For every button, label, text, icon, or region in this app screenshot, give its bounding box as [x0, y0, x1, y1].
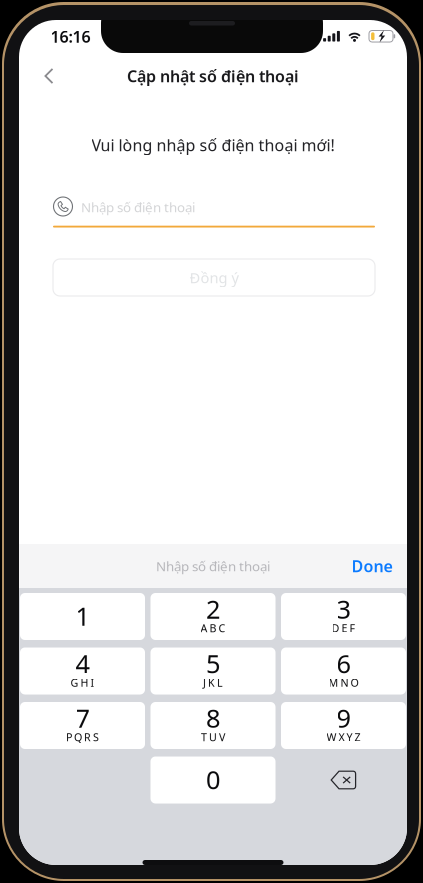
staticText: 16:16 [50, 26, 90, 47]
staticText: Nhập số điện thoại [81, 198, 195, 216]
staticText: 0 [206, 763, 220, 796]
button[interactable]: 3 [281, 593, 406, 640]
staticText: 5 [206, 647, 220, 680]
button[interactable]: Done [344, 544, 400, 588]
staticText: T U V [201, 730, 225, 744]
staticText: 1 [75, 599, 89, 633]
staticText: J K L [203, 675, 223, 690]
staticText: 8 [206, 701, 220, 735]
button[interactable]: 2 [150, 593, 275, 640]
button[interactable]: 0 [150, 756, 275, 803]
button[interactable]: 7 [20, 702, 145, 749]
staticText: 7 [75, 701, 89, 735]
staticText: Vui lòng nhập số điện thoại mới! [91, 134, 334, 156]
button[interactable]: Đồng ý [53, 259, 375, 296]
button[interactable]: Delete [281, 756, 406, 803]
button[interactable]: 1 [20, 593, 145, 640]
button[interactable]: 9 [281, 702, 406, 749]
staticText: 2 [206, 592, 220, 626]
staticText: D E F [331, 621, 355, 635]
staticText: M N O [328, 675, 358, 690]
staticText: P Q R S [66, 730, 99, 744]
staticText: 9 [336, 701, 350, 735]
staticText: Nhập số điện thoại [156, 557, 270, 575]
staticText: W X Y Z [326, 730, 360, 744]
staticText: G H I [70, 675, 94, 690]
button[interactable]: 8 [150, 702, 275, 749]
staticText: 6 [336, 647, 350, 680]
button[interactable]: 5 [150, 647, 275, 694]
staticText: Cập nhật số điện thoại [127, 65, 299, 87]
button[interactable]: 4 [20, 647, 145, 694]
staticText: Đồng ý [189, 268, 238, 287]
staticText: 4 [75, 647, 89, 680]
button[interactable]: Back [27, 54, 71, 98]
staticText: 3 [336, 592, 350, 626]
staticText: A B C [200, 621, 225, 635]
staticText: Done [351, 555, 392, 577]
button[interactable]: 6 [281, 647, 406, 694]
